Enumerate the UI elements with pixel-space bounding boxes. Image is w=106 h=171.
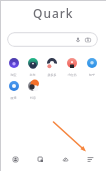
button[interactable]: 小红书 (62, 58, 82, 77)
button[interactable]: Voice search (7, 32, 98, 47)
button[interactable]: Scan (83, 35, 93, 45)
button[interactable]: Menu (78, 149, 103, 170)
staticText: 淘宝 (4, 73, 23, 77)
button[interactable]: 拼多多 (42, 58, 62, 77)
button[interactable]: Cloud sync (53, 149, 78, 170)
button[interactable]: 微博 (4, 81, 23, 100)
staticText: 知乎 (82, 73, 102, 77)
button[interactable]: 知乎 (82, 58, 102, 77)
staticText: 拼多多 (42, 73, 62, 77)
button[interactable]: 京东 (23, 58, 42, 77)
button[interactable]: 抖音 (23, 81, 43, 100)
button[interactable]: Tabs (28, 149, 53, 170)
staticText: 抖音 (23, 96, 43, 100)
staticText: 微博 (4, 96, 23, 100)
button[interactable]: Home (3, 149, 28, 170)
button[interactable]: 淘宝 (4, 58, 23, 77)
staticText: Quark (33, 5, 74, 21)
staticText: 小红书 (62, 73, 82, 77)
staticText: 京东 (23, 73, 42, 77)
button[interactable]: Voice search (73, 35, 83, 45)
